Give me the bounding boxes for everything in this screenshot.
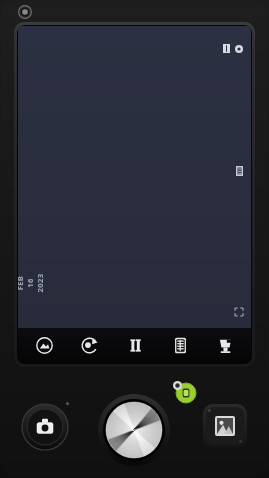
button[interactable]: White balance xyxy=(70,329,108,362)
button[interactable]: Storage xyxy=(161,329,199,362)
button[interactable]: Connected xyxy=(176,383,196,403)
button[interactable]: Scene mode xyxy=(25,329,63,362)
button[interactable]: Battery xyxy=(223,44,230,53)
button[interactable]: Mode xyxy=(236,166,243,176)
button[interactable]: Power xyxy=(18,5,32,19)
button[interactable]: Gallery xyxy=(203,404,247,448)
button[interactable]: Shutter xyxy=(98,394,170,466)
staticText: FEB 16 2023 xyxy=(17,271,45,295)
button[interactable]: Flash xyxy=(206,329,244,362)
button[interactable]: Exposure xyxy=(116,329,154,362)
button[interactable]: Resize xyxy=(235,308,243,316)
button[interactable]: Storage xyxy=(235,45,243,53)
button[interactable]: Camera mode xyxy=(22,404,68,450)
button[interactable]: Battery xyxy=(18,26,251,328)
